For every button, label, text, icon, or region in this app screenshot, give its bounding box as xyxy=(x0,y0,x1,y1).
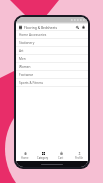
button[interactable]: Footwear xyxy=(16,71,88,79)
staticText: Profile xyxy=(75,156,83,160)
staticText: Cart xyxy=(58,156,64,160)
staticText: Sports & Fitness xyxy=(19,81,44,85)
button[interactable]: Stationery xyxy=(16,39,88,47)
button[interactable]: Home xyxy=(16,151,34,161)
button[interactable]: Menu xyxy=(18,25,23,30)
staticText: Category xyxy=(37,156,49,160)
staticText: Home xyxy=(21,156,29,160)
button[interactable]: Men xyxy=(16,55,88,63)
button[interactable]: Home Accessories xyxy=(16,31,88,39)
staticText: Men xyxy=(19,57,26,61)
button[interactable]: Cart xyxy=(52,151,70,161)
button[interactable]: Cart xyxy=(80,24,86,30)
button[interactable]: Profile xyxy=(70,151,88,161)
button[interactable]: Category xyxy=(34,151,52,161)
button[interactable]: Sports & Fitness xyxy=(16,79,88,87)
staticText: Footwear xyxy=(19,73,34,77)
staticText: Art xyxy=(19,49,24,53)
button[interactable]: Women xyxy=(16,63,88,71)
staticText: Home Accessories xyxy=(19,33,47,37)
staticText: Stationery xyxy=(19,41,35,45)
button[interactable]: Art xyxy=(16,47,88,55)
staticText: Flooring & Bedsheets xyxy=(24,25,58,29)
button[interactable]: Search xyxy=(74,24,80,30)
staticText: Women xyxy=(19,65,31,69)
